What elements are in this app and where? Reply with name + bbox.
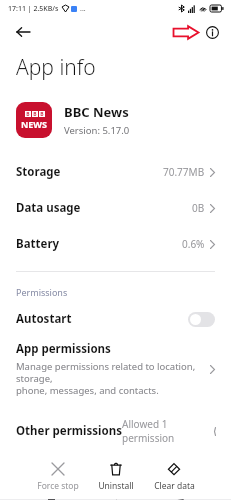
button[interactable]: Home bbox=[103, 499, 129, 500]
button[interactable]: Autostart bbox=[0, 311, 231, 327]
button[interactable]: Data usage bbox=[0, 190, 231, 226]
staticText: B bbox=[26, 111, 30, 117]
button[interactable]: Back bbox=[167, 499, 193, 500]
button[interactable]: Clear data bbox=[150, 459, 198, 495]
button[interactable]: Battery bbox=[0, 226, 231, 262]
staticText: App info bbox=[16, 53, 96, 82]
staticText: BBC News bbox=[64, 103, 129, 121]
button[interactable]: App permissions bbox=[0, 341, 231, 397]
staticText: 70.77MB bbox=[163, 165, 205, 179]
button[interactable]: Back bbox=[10, 19, 36, 45]
staticText: 0B bbox=[192, 201, 205, 215]
staticText: Data usage bbox=[16, 200, 81, 216]
staticText: NEWS bbox=[21, 118, 48, 130]
button[interactable]: Recents bbox=[38, 499, 64, 500]
staticText: ... bbox=[80, 4, 86, 14]
staticText: 17:11 | 2.5KB/s bbox=[8, 4, 59, 14]
staticText: B bbox=[40, 111, 44, 117]
staticText: Version: 5.17.0 bbox=[64, 124, 130, 137]
staticText: Autostart bbox=[16, 311, 72, 327]
staticText: Storage bbox=[16, 164, 61, 180]
button[interactable]: Info bbox=[201, 21, 223, 43]
staticText: 0.6% bbox=[182, 237, 205, 251]
staticText: Other permissions bbox=[16, 423, 122, 439]
staticText: Allowed 1 permission bbox=[122, 417, 215, 445]
button[interactable]: Uninstall bbox=[92, 459, 140, 495]
button[interactable]: Storage bbox=[0, 154, 231, 190]
button[interactable]: B bbox=[0, 102, 231, 138]
staticText: Permissions bbox=[16, 286, 68, 298]
staticText: App permissions bbox=[16, 341, 111, 357]
button[interactable]: Force stop bbox=[34, 459, 82, 495]
staticText: Uninstall bbox=[98, 480, 134, 492]
staticText: Battery bbox=[16, 236, 60, 252]
staticText: Force stop bbox=[37, 480, 79, 492]
button[interactable]: Other permissions bbox=[0, 407, 231, 455]
staticText: B bbox=[33, 111, 37, 117]
staticText: Manage permissions related to location, … bbox=[16, 360, 204, 397]
staticText: Clear data bbox=[154, 480, 195, 492]
